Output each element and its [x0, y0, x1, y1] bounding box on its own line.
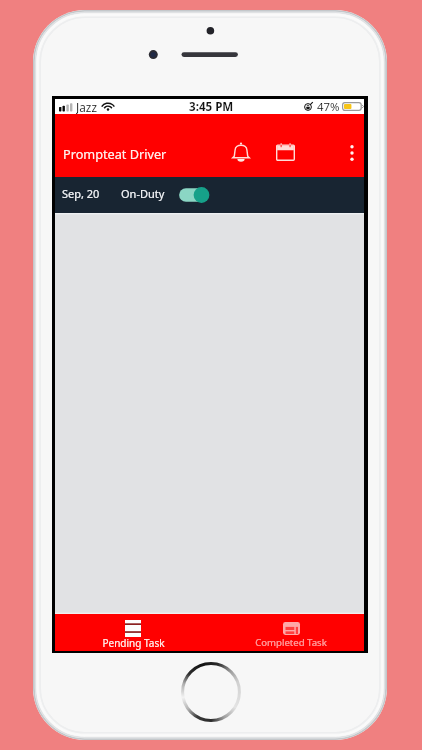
staticText: 47%: [317, 99, 340, 114]
button[interactable]: More options: [335, 136, 369, 170]
button[interactable]: Completed Task: [211, 614, 364, 651]
staticText: Pending Task: [102, 636, 165, 650]
staticText: On-Duty: [121, 186, 165, 201]
button[interactable]: Notifications: [224, 135, 258, 169]
staticText: Completed Task: [255, 636, 327, 649]
staticText: 3:45 PM: [189, 99, 234, 114]
button[interactable]: Home: [179, 660, 243, 724]
staticText: Jazz: [76, 99, 97, 114]
button[interactable]: On duty toggle: [178, 185, 212, 205]
button[interactable]: Calendar: [268, 135, 302, 169]
button[interactable]: Pending Task: [55, 614, 211, 651]
staticText: Sep, 20: [62, 186, 100, 201]
staticText: Prompteat Driver: [63, 145, 167, 162]
